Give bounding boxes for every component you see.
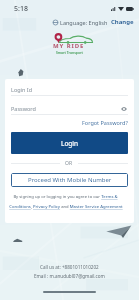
staticText: Email : m.anudubl07@gmail.com — [34, 273, 105, 279]
staticText: Smart Transport — [56, 50, 83, 55]
staticText: By signing up or logging in you agree to… — [13, 194, 118, 200]
staticText: OR — [65, 160, 73, 167]
staticText: Login — [61, 139, 79, 148]
staticText: Password — [11, 105, 120, 112]
staticText: Language: English — [60, 19, 108, 26]
staticText: Conditions, Privacy Policy and Master Se… — [9, 204, 123, 210]
staticText: 5:18 — [14, 4, 28, 14]
button[interactable]: Proceed With Mobile Number — [11, 173, 128, 187]
staticText: MY RIDE — [53, 42, 85, 50]
staticText: Proceed With Mobile Number — [28, 176, 112, 184]
staticText: Forgot Password? — [82, 119, 128, 126]
button[interactable]: By signing up or logging in you agree to… — [7, 194, 124, 210]
staticText: Change — [111, 18, 134, 26]
staticText: Call us at: +8801011010202 — [40, 264, 99, 270]
staticText: Login Id — [11, 86, 128, 93]
button[interactable]: Show password — [120, 105, 128, 113]
button[interactable]: Login — [11, 132, 128, 154]
button[interactable]: Forgot Password? — [82, 119, 128, 126]
button[interactable]: Change — [111, 18, 134, 26]
